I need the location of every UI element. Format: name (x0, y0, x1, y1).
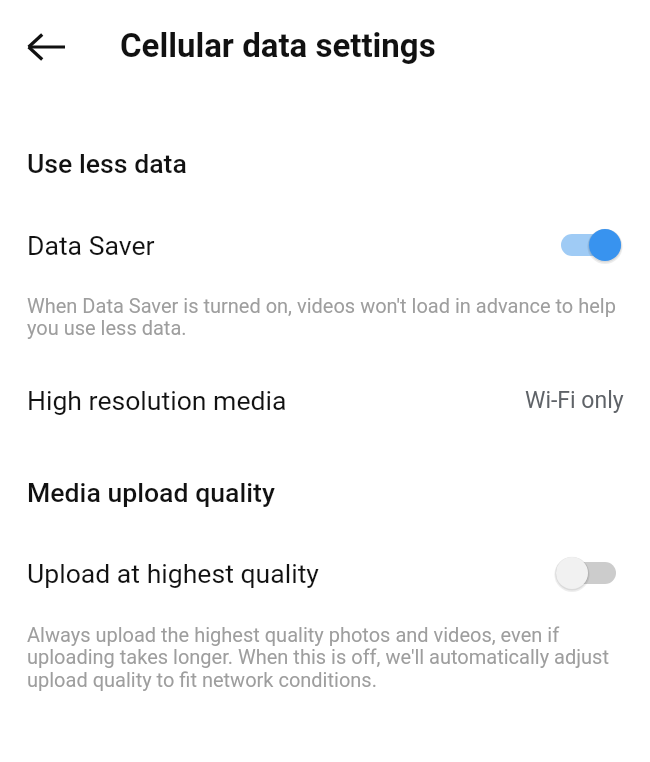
button[interactable]: Upload at highest quality switch, off (555, 555, 617, 591)
staticText: Data Saver (27, 230, 155, 261)
staticText: Media upload quality (27, 477, 275, 508)
staticText: High resolution media (27, 385, 287, 416)
button[interactable]: Upload at highest quality (0, 546, 650, 600)
button[interactable]: High resolution media (0, 381, 650, 419)
staticText: Wi-Fi only (525, 387, 624, 414)
staticText: Use less data (27, 148, 187, 179)
staticText: Cellular data settings (120, 26, 436, 65)
button[interactable]: Data Saver (0, 218, 650, 272)
staticText: Always upload the highest quality photos… (27, 623, 619, 692)
staticText: Upload at highest quality (27, 558, 319, 589)
staticText: When Data Saver is turned on, videos won… (27, 294, 619, 340)
button[interactable]: Navigate back (11, 12, 81, 82)
button[interactable]: Data Saver switch, on (560, 227, 622, 263)
